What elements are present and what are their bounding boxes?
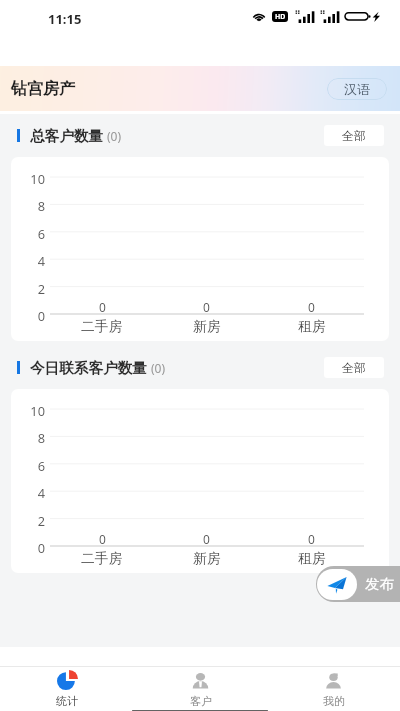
staticText: 2 bbox=[11, 512, 45, 529]
staticText: 6 bbox=[11, 457, 45, 474]
staticText: (0) bbox=[151, 360, 166, 376]
staticText: 二手房 bbox=[81, 318, 123, 335]
button[interactable]: 全部 bbox=[324, 125, 384, 146]
staticText: 新房 bbox=[193, 318, 221, 335]
staticText: 今日联系客户数量 bbox=[30, 359, 147, 377]
staticText: 钻宫房产 bbox=[11, 79, 75, 99]
staticText: 4 bbox=[11, 484, 45, 501]
staticText: 0 bbox=[99, 299, 106, 315]
staticText: 新房 bbox=[193, 550, 221, 567]
staticText: 8 bbox=[11, 197, 45, 214]
staticText: 4 bbox=[11, 252, 45, 269]
staticText: 0 bbox=[203, 531, 210, 547]
staticText: 全部 bbox=[342, 360, 366, 375]
staticText: 发布 bbox=[365, 575, 394, 593]
staticText: 客户 bbox=[190, 694, 212, 708]
staticText: 统计 bbox=[56, 694, 78, 708]
staticText: HD bbox=[275, 12, 286, 22]
staticText: 二手房 bbox=[81, 550, 123, 567]
staticText: 总客户数量 bbox=[30, 127, 103, 145]
staticText: 0 bbox=[203, 299, 210, 315]
staticText: (0) bbox=[107, 128, 122, 144]
staticText: 8 bbox=[11, 429, 45, 446]
staticText: 0 bbox=[11, 539, 45, 556]
staticText: 11:15 bbox=[48, 10, 82, 28]
staticText: 租房 bbox=[298, 318, 326, 335]
button[interactable]: 我的 bbox=[267, 672, 400, 708]
staticText: 全部 bbox=[342, 128, 366, 143]
button[interactable]: 统计 bbox=[0, 672, 134, 708]
staticText: 2 bbox=[11, 280, 45, 297]
staticText: 租房 bbox=[298, 550, 326, 567]
staticText: 10 bbox=[11, 170, 45, 187]
button[interactable]: 客户 bbox=[134, 672, 267, 708]
staticText: 0 bbox=[99, 531, 106, 547]
staticText: 0 bbox=[308, 531, 315, 547]
staticText: 6 bbox=[11, 225, 45, 242]
staticText: 汉语 bbox=[344, 81, 370, 97]
button[interactable]: 全部 bbox=[324, 357, 384, 378]
staticText: 0 bbox=[11, 307, 45, 324]
button[interactable]: 发布 bbox=[316, 566, 400, 602]
button[interactable]: 汉语 bbox=[327, 78, 387, 100]
staticText: 我的 bbox=[323, 694, 345, 708]
staticText: 0 bbox=[308, 299, 315, 315]
staticText: 10 bbox=[11, 402, 45, 419]
